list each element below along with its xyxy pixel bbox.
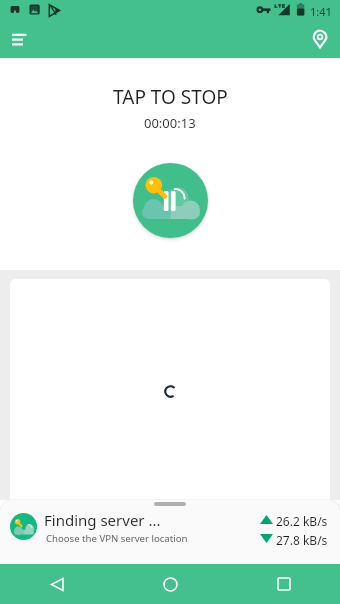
button[interactable]: Stop VPN (133, 163, 208, 238)
staticText: 27.8 kB/s (276, 532, 328, 548)
staticText: 1:41 (310, 4, 332, 19)
staticText: 00:00:13 (144, 114, 196, 132)
button[interactable]: Finding server ... (0, 500, 340, 564)
staticText: Choose the VPN server location (46, 532, 188, 545)
staticText: 26.2 kB/s (276, 513, 328, 529)
button[interactable]: Menu (0, 21, 38, 59)
button[interactable]: Home (114, 564, 227, 604)
button[interactable]: Choose server location (302, 21, 340, 59)
button[interactable]: Recent apps (227, 564, 340, 604)
staticText: TAP TO STOP (113, 84, 228, 110)
staticText: Finding server ... (44, 510, 161, 530)
button[interactable]: Back (0, 564, 114, 604)
